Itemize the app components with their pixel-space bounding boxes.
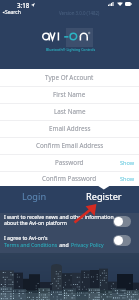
button[interactable]: Email Address	[0, 120, 139, 137]
button[interactable]: Toggle	[113, 235, 131, 246]
staticText: Type Of Account	[45, 73, 94, 82]
button[interactable]: Register	[69, 183, 139, 210]
button[interactable]: Password	[0, 154, 139, 171]
staticText: Show	[120, 175, 135, 183]
button[interactable]: Confirm Password	[0, 171, 139, 186]
staticText: I want to receive news and other informa…	[4, 213, 114, 227]
button[interactable]: Terms and Conditions	[4, 241, 58, 248]
staticText: Last Name	[54, 107, 86, 116]
button[interactable]: First Name	[0, 86, 139, 103]
button[interactable]: Confirm Email Address	[0, 137, 139, 154]
staticText: Confirm Password	[42, 174, 97, 183]
staticText: Email Address	[49, 124, 91, 133]
button[interactable]: Back to Search	[2, 9, 21, 16]
staticText: Password	[55, 158, 84, 167]
staticText: and	[58, 241, 71, 248]
staticText: Show	[120, 159, 135, 167]
button[interactable]: I want to receive news and other informa…	[0, 213, 139, 232]
button[interactable]: I agree to Avi-on's	[0, 232, 139, 251]
staticText: Search	[5, 9, 21, 16]
button[interactable]: Toggle	[113, 216, 131, 227]
button[interactable]: Last Name	[0, 103, 139, 120]
staticText: Register	[86, 190, 122, 203]
staticText: Version 3.0.0 (1482)	[59, 10, 100, 16]
staticText: Login	[22, 190, 47, 203]
staticText: First Name	[53, 90, 86, 99]
button[interactable]: Login	[0, 183, 69, 210]
staticText: I agree to Avi-on's	[4, 234, 48, 241]
staticText: 3:18	[17, 1, 30, 9]
staticText: Confirm Email Address	[36, 141, 104, 150]
button[interactable]: Privacy Policy	[71, 241, 104, 248]
staticText: Bluetooth® Lighting Controls	[46, 47, 96, 52]
button[interactable]: Type Of Account	[0, 69, 139, 86]
